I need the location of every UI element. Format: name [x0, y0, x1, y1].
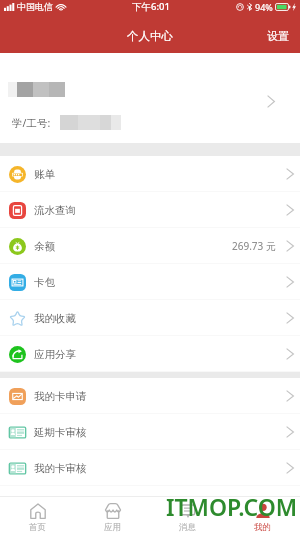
button[interactable]: 我的收藏 — [0, 300, 300, 336]
staticText: 应用分享 — [34, 348, 76, 361]
button[interactable]: 账单 — [0, 156, 300, 192]
staticText: 94% — [255, 1, 273, 13]
button[interactable]: 应用分享 — [0, 336, 300, 372]
button[interactable]: 学/工号: — [0, 53, 300, 143]
staticText: 流水查询 — [34, 204, 76, 217]
staticText: 个人中心 — [127, 29, 173, 43]
staticText: 消息 — [179, 522, 196, 533]
staticText: 余额 — [34, 240, 55, 253]
button[interactable]: 我的 — [225, 497, 300, 533]
staticText: 269.73 元 — [232, 239, 276, 253]
button[interactable]: 流水查询 — [0, 192, 300, 228]
staticText: 首页 — [29, 522, 46, 533]
staticText: 我的收藏 — [34, 312, 76, 325]
button[interactable]: 延期卡审核 — [0, 414, 300, 450]
button[interactable]: 余额 — [0, 228, 300, 264]
staticText: ITMOP.COM — [166, 491, 298, 522]
staticText: 中国电信 — [17, 1, 53, 12]
button[interactable]: 我的卡审核 — [0, 450, 300, 486]
staticText: 应用 — [104, 522, 121, 533]
staticText: 学/工号: — [12, 116, 51, 130]
button[interactable]: 应用 — [75, 497, 150, 533]
button[interactable]: 卡包 — [0, 264, 300, 300]
staticText: 设置 — [267, 29, 289, 43]
staticText: 我的卡审核 — [34, 462, 87, 475]
button[interactable]: 消息 — [150, 497, 225, 533]
staticText: 卡包 — [34, 276, 55, 289]
button[interactable]: 设置 — [257, 21, 300, 51]
button[interactable]: 首页 — [0, 497, 75, 533]
button[interactable]: 我的卡申请 — [0, 378, 300, 414]
staticText: 我的卡申请 — [34, 390, 87, 403]
staticText: 延期卡审核 — [34, 426, 87, 439]
staticText: 我的 — [254, 522, 271, 533]
staticText: 账单 — [34, 168, 55, 181]
staticText: 下午6:01 — [132, 0, 170, 13]
